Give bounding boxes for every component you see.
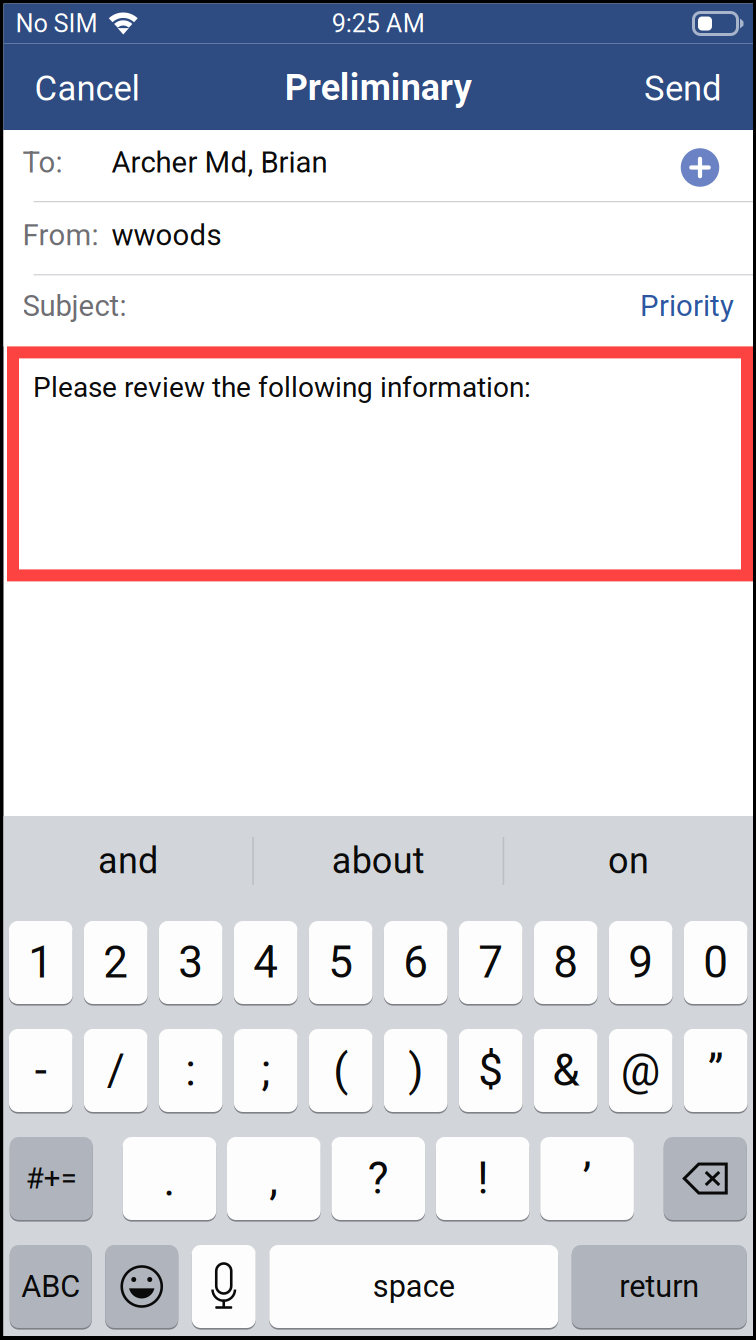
button[interactable]: 0 [684,921,748,1004]
staticText: Cancel [34,69,139,108]
button[interactable]: ) [384,1029,448,1112]
staticText: . [163,1155,175,1206]
staticText: about [332,840,425,881]
button[interactable]: Cancel [20,56,153,122]
staticText: wwoods [111,218,221,252]
button[interactable]: 3 [159,921,223,1004]
button[interactable]: , [227,1137,321,1220]
staticText: From: [22,218,98,252]
staticText: ( [333,1045,348,1096]
button[interactable]: 7 [459,921,523,1004]
button[interactable]: 9 [609,921,673,1004]
button[interactable]: ’ [540,1137,634,1220]
staticText: return [619,1269,699,1304]
button[interactable]: ( [309,1029,373,1112]
button[interactable]: & [534,1029,598,1112]
staticText: ! [477,1153,488,1204]
staticText: $ [478,1045,503,1096]
staticText: Preliminary [285,67,472,108]
staticText: 2 [103,937,128,988]
staticText: ; [261,1045,270,1096]
staticText: 8 [553,937,578,988]
staticText: 6 [403,937,428,988]
staticText: Archer Md, Brian [111,146,327,179]
button[interactable]: on [504,825,753,897]
staticText: 9 [628,937,653,988]
button[interactable]: 4 [234,921,298,1004]
staticText: No SIM [15,9,97,38]
staticText: #+= [26,1162,77,1195]
button[interactable]: Send [630,56,736,122]
staticText: ’ [583,1154,592,1205]
staticText: 0 [703,937,728,988]
button[interactable]: Priority [630,278,744,334]
staticText: Subject: [22,289,126,323]
staticText: and [98,840,158,881]
staticText: 4 [253,937,278,988]
button[interactable]: space [269,1245,558,1328]
staticText: Priority [640,289,734,323]
button[interactable]: $ [459,1029,523,1112]
button[interactable]: Dictation [192,1245,256,1328]
staticText: ) [408,1045,423,1096]
staticText: 7 [478,937,503,988]
button[interactable]: Emoji keyboard [105,1245,178,1328]
button[interactable]: and [3,825,252,897]
staticText: 5 [328,937,353,988]
button[interactable]: Delete [664,1137,747,1220]
staticText: Please review the following information: [33,371,531,403]
button[interactable]: ? [331,1137,425,1220]
staticText: : [185,1045,196,1096]
staticText: & [552,1045,579,1096]
staticText: / [107,1045,125,1096]
staticText: To: [22,146,62,179]
button[interactable]: ” [684,1029,748,1112]
button[interactable]: ; [234,1029,298,1112]
button[interactable]: 2 [84,921,148,1004]
staticText: ” [708,1045,724,1096]
staticText: Send [644,69,722,108]
button[interactable]: #+= [10,1137,93,1220]
staticText: 3 [178,937,203,988]
button[interactable]: Add recipient [669,136,731,198]
staticText: - [35,1045,47,1096]
button[interactable]: 8 [534,921,598,1004]
button[interactable]: . [123,1137,216,1220]
staticText: , [269,1154,278,1205]
button[interactable]: ABC [10,1245,92,1328]
staticText: on [608,840,649,881]
staticText: @ [621,1045,661,1096]
button[interactable]: - [9,1029,73,1112]
staticText: 1 [28,937,53,988]
button[interactable]: 6 [384,921,448,1004]
button[interactable]: : [159,1029,223,1112]
staticText: ABC [21,1269,80,1304]
staticText: 9:25 AM [332,9,425,38]
button[interactable]: @ [609,1029,673,1112]
button[interactable]: about [254,825,503,897]
staticText: ? [368,1153,389,1204]
button[interactable]: return [572,1245,747,1328]
button[interactable]: 5 [309,921,373,1004]
staticText: space [373,1269,455,1304]
button[interactable]: 1 [9,921,73,1004]
button[interactable]: ! [436,1137,529,1220]
button[interactable]: / [84,1029,148,1112]
